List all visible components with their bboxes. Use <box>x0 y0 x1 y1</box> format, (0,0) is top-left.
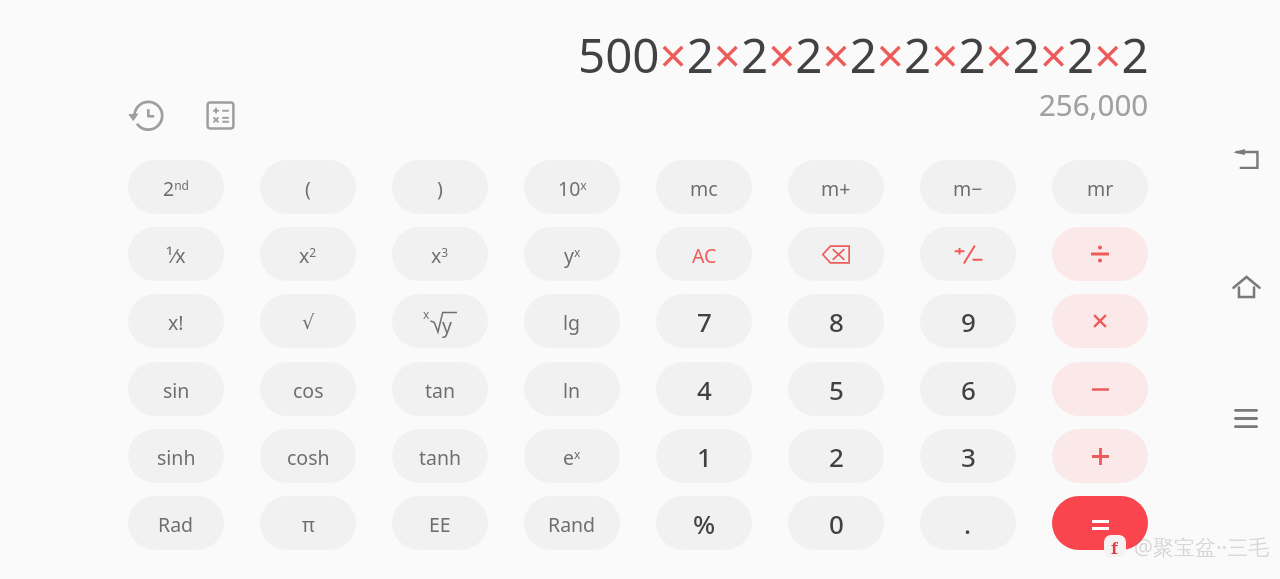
staticText: ¹⁄x <box>166 242 186 269</box>
button[interactable]: √ <box>260 294 356 348</box>
staticText: ( <box>305 175 311 202</box>
button[interactable]: 5 <box>788 362 884 416</box>
button[interactable]: 3 <box>920 429 1016 483</box>
staticText: 7 <box>697 304 712 339</box>
staticText: mc <box>690 175 718 202</box>
staticText: 500×2×2×2×2×2×2×2×2×2 <box>578 22 1149 82</box>
button[interactable] <box>392 294 488 348</box>
button[interactable]: tanh <box>392 429 488 483</box>
staticText: x2 <box>299 242 317 269</box>
staticText: tanh <box>419 444 462 471</box>
staticText: % <box>693 506 716 541</box>
staticText: . <box>964 506 972 541</box>
staticText: 8 <box>829 304 844 339</box>
staticText: 2nd <box>163 175 189 202</box>
staticText: cos <box>293 377 324 404</box>
staticText: √ <box>302 311 315 334</box>
button[interactable] <box>1052 294 1148 348</box>
button[interactable]: Rand <box>524 496 620 550</box>
button[interactable] <box>1052 362 1148 416</box>
staticText: ) <box>437 175 443 202</box>
staticText: sin <box>163 377 190 404</box>
staticText: 2 <box>829 439 844 474</box>
staticText: m− <box>953 175 983 202</box>
staticText: AC <box>692 242 717 269</box>
staticText: y <box>442 312 452 338</box>
button[interactable]: EE <box>392 496 488 550</box>
button[interactable]: % <box>656 496 752 550</box>
button[interactable]: x2 <box>260 227 356 281</box>
staticText: x3 <box>431 242 449 269</box>
staticText: 3 <box>961 439 976 474</box>
staticText: 1 <box>697 439 712 474</box>
button[interactable]: ( <box>260 160 356 214</box>
button[interactable]: lg <box>524 294 620 348</box>
staticText: ln <box>563 377 581 404</box>
staticText: mr <box>1087 175 1114 202</box>
staticText: f <box>1111 536 1118 557</box>
button[interactable]: sin <box>128 362 224 416</box>
button[interactable]: Home <box>1218 259 1274 315</box>
button[interactable]: x! <box>128 294 224 348</box>
button[interactable]: cosh <box>260 429 356 483</box>
button[interactable]: m− <box>920 160 1016 214</box>
button[interactable]: cos <box>260 362 356 416</box>
staticText: 5 <box>829 372 844 407</box>
button[interactable]: 2nd <box>128 160 224 214</box>
staticText: cosh <box>287 444 330 471</box>
staticText: x! <box>168 309 184 336</box>
button[interactable]: sinh <box>128 429 224 483</box>
button[interactable]: Rad <box>128 496 224 550</box>
staticText: tan <box>425 377 456 404</box>
staticText: x <box>423 306 430 322</box>
staticText: 4 <box>697 372 712 407</box>
button[interactable]: tan <box>392 362 488 416</box>
button[interactable]: yx <box>524 227 620 281</box>
button[interactable]: 1 <box>656 429 752 483</box>
staticText: EE <box>429 511 451 538</box>
staticText: lg <box>563 309 581 336</box>
button[interactable] <box>1052 496 1148 550</box>
staticText: @聚宝盆··三毛 <box>1134 533 1270 562</box>
button[interactable]: ex <box>524 429 620 483</box>
button[interactable]: 9 <box>920 294 1016 348</box>
button[interactable]: Formulas <box>200 95 240 135</box>
button[interactable]: 10x <box>524 160 620 214</box>
staticText: Rand <box>548 511 596 538</box>
staticText: yx <box>564 242 581 269</box>
button[interactable] <box>1052 227 1148 281</box>
button[interactable] <box>920 227 1016 281</box>
staticText: 256,000 <box>1039 84 1149 124</box>
button[interactable] <box>1052 429 1148 483</box>
button[interactable]: mr <box>1052 160 1148 214</box>
button[interactable]: x3 <box>392 227 488 281</box>
button[interactable]: ln <box>524 362 620 416</box>
staticText: 6 <box>961 372 976 407</box>
staticText: Rad <box>158 511 194 538</box>
button[interactable]: π <box>260 496 356 550</box>
button[interactable]: ) <box>392 160 488 214</box>
button[interactable]: 7 <box>656 294 752 348</box>
button[interactable]: mc <box>656 160 752 214</box>
staticText: 10x <box>558 175 587 202</box>
staticText: ex <box>563 444 581 471</box>
button[interactable]: 6 <box>920 362 1016 416</box>
button[interactable]: History <box>126 95 166 135</box>
button[interactable]: m+ <box>788 160 884 214</box>
button[interactable]: x <box>392 294 488 348</box>
button[interactable]: AC <box>656 227 752 281</box>
button[interactable]: 0 <box>788 496 884 550</box>
button[interactable] <box>788 227 884 281</box>
button[interactable]: 8 <box>788 294 884 348</box>
staticText: m+ <box>821 175 851 202</box>
staticText: 0 <box>829 506 844 541</box>
staticText: π <box>302 511 315 538</box>
button[interactable]: 4 <box>656 362 752 416</box>
button[interactable]: 2 <box>788 429 884 483</box>
button[interactable]: Menu <box>1218 390 1274 446</box>
staticText: sinh <box>157 444 196 471</box>
staticText: 9 <box>961 304 976 339</box>
button[interactable]: . <box>920 496 1016 550</box>
button[interactable]: ¹⁄x <box>128 227 224 281</box>
button[interactable]: Back <box>1218 131 1274 187</box>
